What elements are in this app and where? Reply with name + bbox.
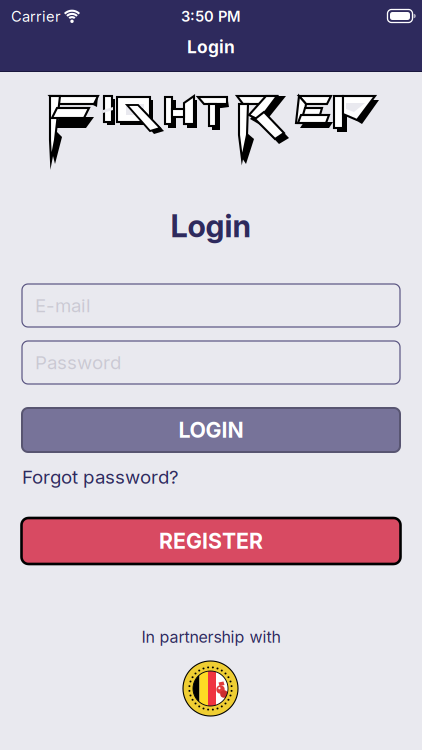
staticText: Carrier [11,8,61,25]
staticText: Forgot password? [22,466,179,488]
button[interactable]: LOGIN [22,408,400,452]
button[interactable]: Forgot password? [22,466,179,488]
button[interactable]: E-mail [22,284,400,327]
staticText: E-mail [35,294,91,316]
staticText: In partnership with [141,628,280,646]
button[interactable]: Password [22,341,400,384]
staticText: Password [35,351,121,373]
staticText: Login [187,37,235,57]
staticText: Login [170,208,251,244]
staticText: 3:50 PM [181,8,241,25]
button[interactable]: REGISTER [21,518,400,564]
staticText: LOGIN [178,417,243,443]
staticText: REGISTER [159,528,263,554]
